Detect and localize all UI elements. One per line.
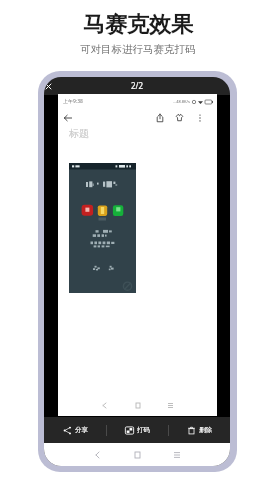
staticText: 可对目标进行马赛克打码 [80,43,196,56]
button[interactable]: Close [44,80,55,93]
staticText: 上午9:38 [63,98,83,105]
staticText: 马赛克效果 [83,11,193,39]
button[interactable]: Recents [154,394,187,416]
button[interactable]: Back [60,110,75,125]
staticText: 标题 [69,127,89,140]
staticText: 删除 [199,426,212,434]
button[interactable]: 分享 [44,417,106,443]
staticText: 2/2 [131,80,144,91]
staticText: 打码 [137,426,150,434]
button[interactable]: More options [192,110,207,125]
button[interactable]: Theme [172,110,187,125]
button[interactable]: 删除 [169,417,230,443]
button[interactable]: Share [152,110,167,125]
button[interactable]: Home [121,394,154,416]
button[interactable]: Back [77,443,117,466]
button[interactable]: Home [117,443,157,466]
staticText: …48.8K/s [173,99,190,104]
button[interactable]: Recents [157,443,197,466]
button[interactable]: Back [88,394,121,416]
button[interactable]: 打码 [107,417,168,443]
staticText: 分享 [75,426,88,434]
